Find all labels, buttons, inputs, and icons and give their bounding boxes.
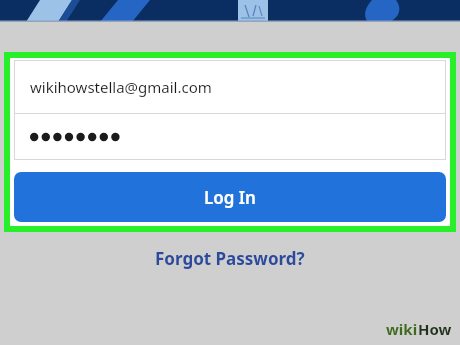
staticText: Forgot Password? <box>155 247 305 270</box>
staticText: wiki <box>386 319 418 339</box>
button[interactable]: Forgot Password? <box>143 243 317 274</box>
staticText: How <box>418 319 452 339</box>
button[interactable]: Log In <box>14 172 446 222</box>
staticText: Log In <box>204 186 256 209</box>
button[interactable]: wikihowstella@gmail.com <box>14 60 446 113</box>
button[interactable]: Password <box>14 114 446 160</box>
staticText: wikihowstella@gmail.com <box>30 77 212 97</box>
